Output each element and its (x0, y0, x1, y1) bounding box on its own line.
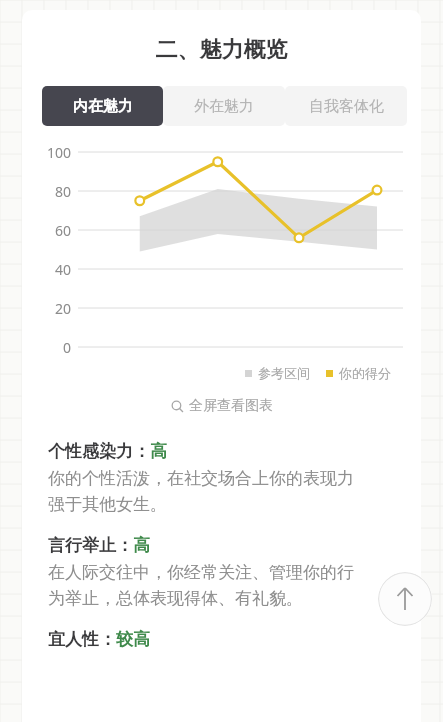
button[interactable]: Scroll to top (378, 572, 432, 626)
staticText: 60 (55, 221, 72, 240)
staticText: 你的个性活泼，在社交场合上你的表现力 强于其他女生。 (48, 468, 354, 515)
staticText: 100 (47, 143, 72, 162)
button[interactable]: 全屏查看图表 (22, 395, 421, 417)
button[interactable]: 内在魅力 (42, 86, 163, 126)
staticText: 内在魅力 (73, 97, 133, 116)
staticText: 0 (63, 338, 72, 357)
button[interactable]: 自我客体化 (285, 86, 407, 126)
staticText: 外在魅力 (194, 97, 254, 116)
staticText: 在人际交往中，你经常关注、管理你的行 为举止，总体表现得体、有礼貌。 (48, 562, 354, 609)
staticText: 80 (55, 182, 72, 201)
staticText: 自我客体化 (309, 97, 384, 116)
staticText: 二、魅力概览 (22, 36, 421, 64)
button[interactable]: 外在魅力 (163, 86, 285, 126)
staticText: 宜人性：较高 (48, 629, 150, 650)
staticText: 你的得分 (339, 365, 391, 381)
staticText: 20 (55, 299, 72, 318)
staticText: 40 (55, 260, 72, 279)
staticText: 全屏查看图表 (189, 397, 273, 415)
staticText: 个性感染力：高 (48, 441, 167, 462)
staticText: 言行举止：高 (48, 535, 150, 556)
staticText: 参考区间 (258, 365, 310, 381)
